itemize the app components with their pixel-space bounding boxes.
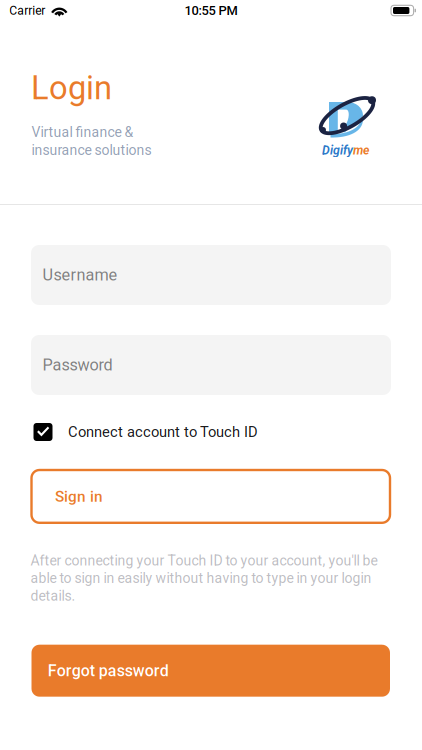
staticText: me: [353, 143, 369, 157]
staticText: insurance solutions: [31, 142, 151, 158]
staticText: 10:55 PM: [184, 3, 237, 18]
staticText: Forgot password: [48, 661, 169, 680]
button[interactable]: Username: [31, 245, 391, 305]
staticText: Username: [42, 265, 117, 285]
staticText: Virtual finance &: [31, 124, 133, 140]
staticText: Carrier: [9, 3, 45, 18]
button[interactable]: Sign in: [31, 470, 390, 523]
staticText: Login: [31, 69, 112, 107]
button[interactable]: Password: [31, 335, 391, 395]
staticText: After connecting your Touch ID to your a…: [30, 552, 377, 604]
staticText: Connect account to Touch ID: [68, 423, 258, 441]
staticText: Password: [42, 355, 112, 375]
staticText: Digify: [322, 143, 353, 157]
staticText: Sign in: [55, 487, 103, 505]
button[interactable]: Forgot password: [31, 645, 390, 697]
button[interactable]: Connect account to Touch ID: [33, 420, 393, 444]
